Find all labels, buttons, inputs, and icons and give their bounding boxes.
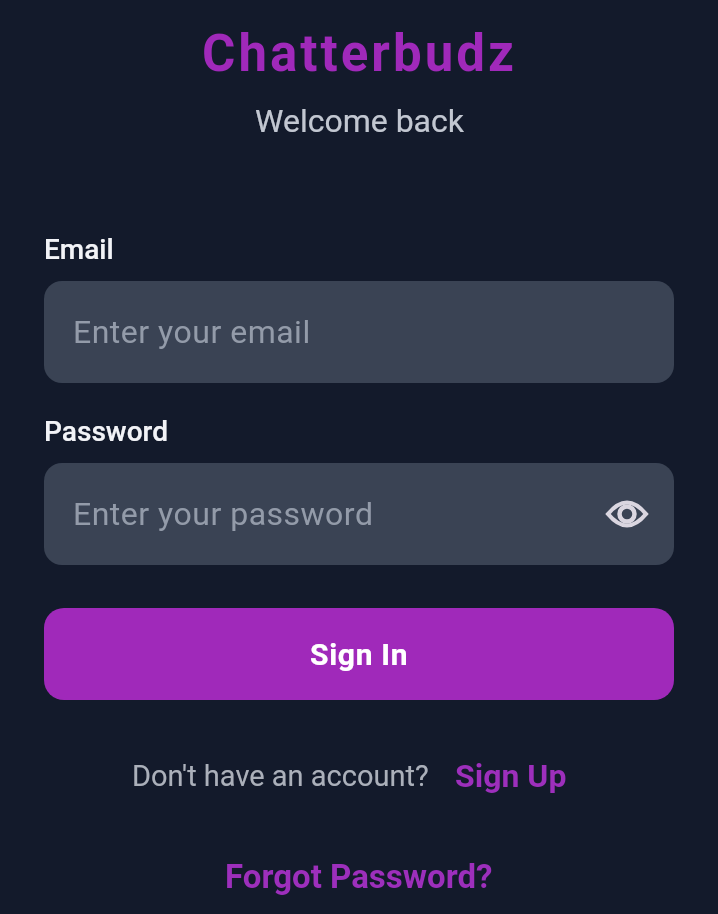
button[interactable]: Sign Up: [455, 757, 567, 795]
button[interactable]: Forgot Password?: [225, 857, 493, 896]
staticText: Sign In: [310, 637, 409, 672]
staticText: Don't have an account?: [132, 759, 429, 793]
staticText: Chatterbudz: [202, 24, 517, 84]
staticText: Enter your password: [73, 495, 374, 533]
staticText: Password: [44, 415, 169, 448]
button[interactable]: Enter your email: [44, 281, 674, 383]
staticText: Welcome back: [255, 102, 464, 140]
button[interactable]: Enter your password: [44, 463, 674, 565]
button[interactable]: Sign In: [44, 608, 674, 700]
staticText: Email: [44, 233, 114, 266]
button[interactable]: [605, 498, 649, 530]
staticText: Enter your email: [73, 313, 311, 351]
